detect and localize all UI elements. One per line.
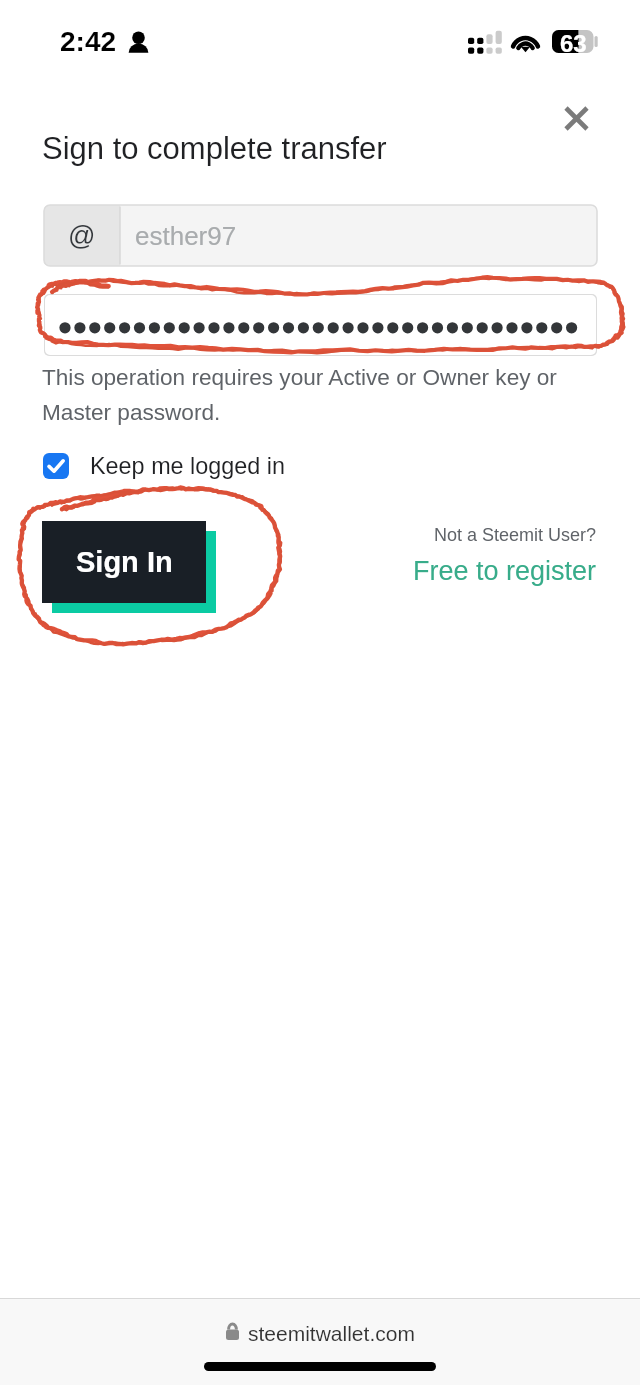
staticText: esther97 — [135, 221, 237, 250]
staticText: Sign In — [76, 546, 173, 578]
staticText: @ — [68, 221, 96, 251]
button[interactable]: steemitwallet.com — [0, 1322, 640, 1370]
button[interactable]: Sign In — [42, 521, 206, 603]
staticText: This operation requires your Active or O… — [42, 365, 557, 425]
button[interactable]: Free to register — [413, 556, 597, 586]
button[interactable]: @ — [44, 205, 597, 266]
staticText: Keep me logged in — [90, 453, 286, 479]
staticText: steemitwallet.com — [248, 1322, 415, 1345]
button[interactable]: Password — [44, 294, 597, 356]
button[interactable]: Close — [551, 92, 601, 142]
button[interactable]: Keep me logged in — [43, 449, 286, 483]
staticText: Sign to complete transfer — [42, 131, 387, 166]
staticText: Not a Steemit User? — [434, 525, 597, 545]
staticText: Free to register — [413, 556, 597, 586]
staticText: 63 — [560, 30, 587, 57]
staticText: 2:42 — [60, 26, 117, 57]
